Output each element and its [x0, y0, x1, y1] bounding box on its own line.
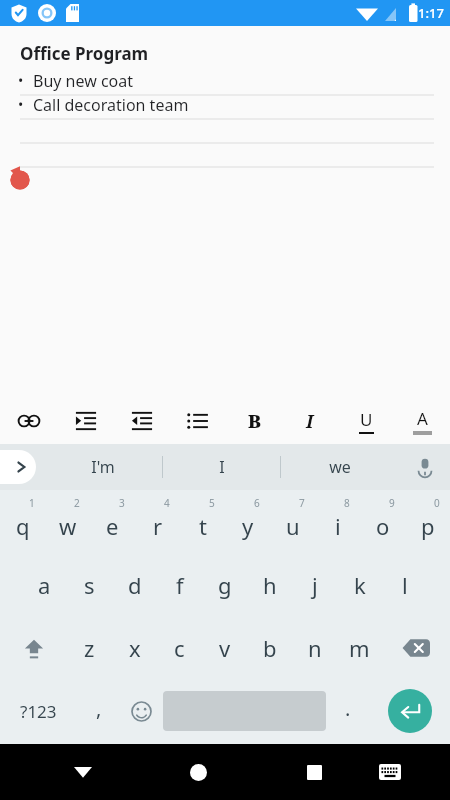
- staticText: o: [376, 511, 390, 541]
- button[interactable]: Decrease indent: [114, 398, 170, 444]
- staticText: k: [354, 570, 366, 600]
- staticText: v: [219, 633, 231, 663]
- staticText: .: [345, 695, 351, 722]
- staticText: 1:17: [418, 4, 444, 22]
- button[interactable]: w: [45, 490, 90, 554]
- button[interactable]: n: [292, 616, 337, 680]
- staticText: n: [308, 633, 322, 663]
- staticText: Buy new coat: [33, 70, 134, 92]
- staticText: u: [286, 511, 300, 541]
- staticText: e: [106, 511, 119, 541]
- button[interactable]: o: [360, 490, 405, 554]
- button[interactable]: .: [326, 680, 369, 742]
- button[interactable]: I'm: [44, 444, 162, 490]
- button[interactable]: h: [247, 554, 292, 616]
- staticText: •: [18, 71, 24, 90]
- staticText: 9: [389, 496, 395, 510]
- button[interactable]: x: [112, 616, 157, 680]
- staticText: p: [421, 511, 435, 541]
- staticText: a: [38, 570, 51, 600]
- button[interactable]: d: [112, 554, 157, 616]
- button[interactable]: Text color: [394, 398, 450, 444]
- button[interactable]: ?123: [0, 680, 77, 742]
- button[interactable]: r: [135, 490, 180, 554]
- staticText: 2: [74, 496, 80, 510]
- button[interactable]: c: [157, 616, 202, 680]
- staticText: z: [84, 633, 95, 663]
- staticText: x: [129, 633, 141, 663]
- staticText: 8: [344, 496, 350, 510]
- button[interactable]: g: [202, 554, 247, 616]
- staticText: l: [402, 570, 408, 600]
- button[interactable]: Underline: [338, 398, 394, 444]
- button[interactable]: Bulleted list: [170, 398, 226, 444]
- staticText: 1: [29, 496, 35, 510]
- button[interactable]: u: [270, 490, 315, 554]
- staticText: y: [242, 511, 254, 541]
- staticText: ?123: [20, 700, 57, 723]
- button[interactable]: Home: [161, 744, 236, 800]
- staticText: b: [263, 633, 277, 663]
- button[interactable]: Emoji: [120, 680, 163, 742]
- button[interactable]: Increase indent: [57, 398, 114, 444]
- staticText: A: [417, 407, 428, 430]
- button[interactable]: m: [337, 616, 382, 680]
- staticText: 5: [209, 496, 215, 510]
- button[interactable]: q: [0, 490, 45, 554]
- staticText: Office Program: [20, 42, 149, 65]
- button[interactable]: p: [405, 490, 450, 554]
- button[interactable]: Bold: [226, 398, 282, 444]
- staticText: w: [59, 511, 77, 541]
- staticText: 4: [164, 496, 170, 510]
- button[interactable]: ,: [77, 680, 120, 742]
- staticText: m: [349, 633, 370, 663]
- button[interactable]: j: [292, 554, 337, 616]
- staticText: d: [128, 570, 142, 600]
- staticText: we: [329, 456, 351, 478]
- staticText: I: [306, 409, 314, 434]
- staticText: f: [176, 570, 184, 600]
- button[interactable]: s: [67, 554, 112, 616]
- staticText: Call decoration team: [33, 94, 189, 116]
- button[interactable]: we: [281, 444, 398, 490]
- staticText: j: [312, 570, 318, 600]
- button[interactable]: v: [202, 616, 247, 680]
- staticText: I: [219, 456, 225, 478]
- button[interactable]: Enter: [369, 680, 450, 742]
- button[interactable]: f: [157, 554, 202, 616]
- button[interactable]: i: [315, 490, 360, 554]
- button[interactable]: t: [180, 490, 225, 554]
- button[interactable]: Shift: [0, 616, 67, 680]
- button[interactable]: Insert link: [0, 398, 57, 444]
- staticText: 3: [119, 496, 125, 510]
- button[interactable]: e: [90, 490, 135, 554]
- button[interactable]: Backspace: [382, 616, 450, 680]
- button[interactable]: I: [163, 444, 280, 490]
- staticText: s: [84, 570, 95, 600]
- button[interactable]: a: [22, 554, 67, 616]
- staticText: i: [335, 511, 341, 541]
- staticText: •: [18, 95, 24, 114]
- staticText: ,: [96, 695, 102, 722]
- button[interactable]: b: [247, 616, 292, 680]
- staticText: B: [248, 409, 261, 434]
- button[interactable]: Recent apps: [277, 744, 352, 800]
- button[interactable]: Close keyboard: [45, 744, 120, 800]
- button[interactable]: Italic: [282, 398, 338, 444]
- button[interactable]: Voice input: [400, 444, 450, 490]
- other: Text cursor handle: [8, 167, 32, 191]
- staticText: I'm: [91, 456, 115, 478]
- staticText: U: [360, 408, 373, 431]
- button[interactable]: y: [225, 490, 270, 554]
- button[interactable]: k: [337, 554, 382, 616]
- staticText: r: [153, 511, 163, 541]
- button[interactable]: Expand toolbar: [0, 450, 36, 484]
- button[interactable]: z: [67, 616, 112, 680]
- staticText: h: [263, 570, 277, 600]
- staticText: g: [218, 570, 232, 600]
- button[interactable]: Switch keyboard: [352, 744, 427, 800]
- staticText: 6: [254, 496, 260, 510]
- button[interactable]: l: [382, 554, 427, 616]
- staticText: t: [199, 511, 207, 541]
